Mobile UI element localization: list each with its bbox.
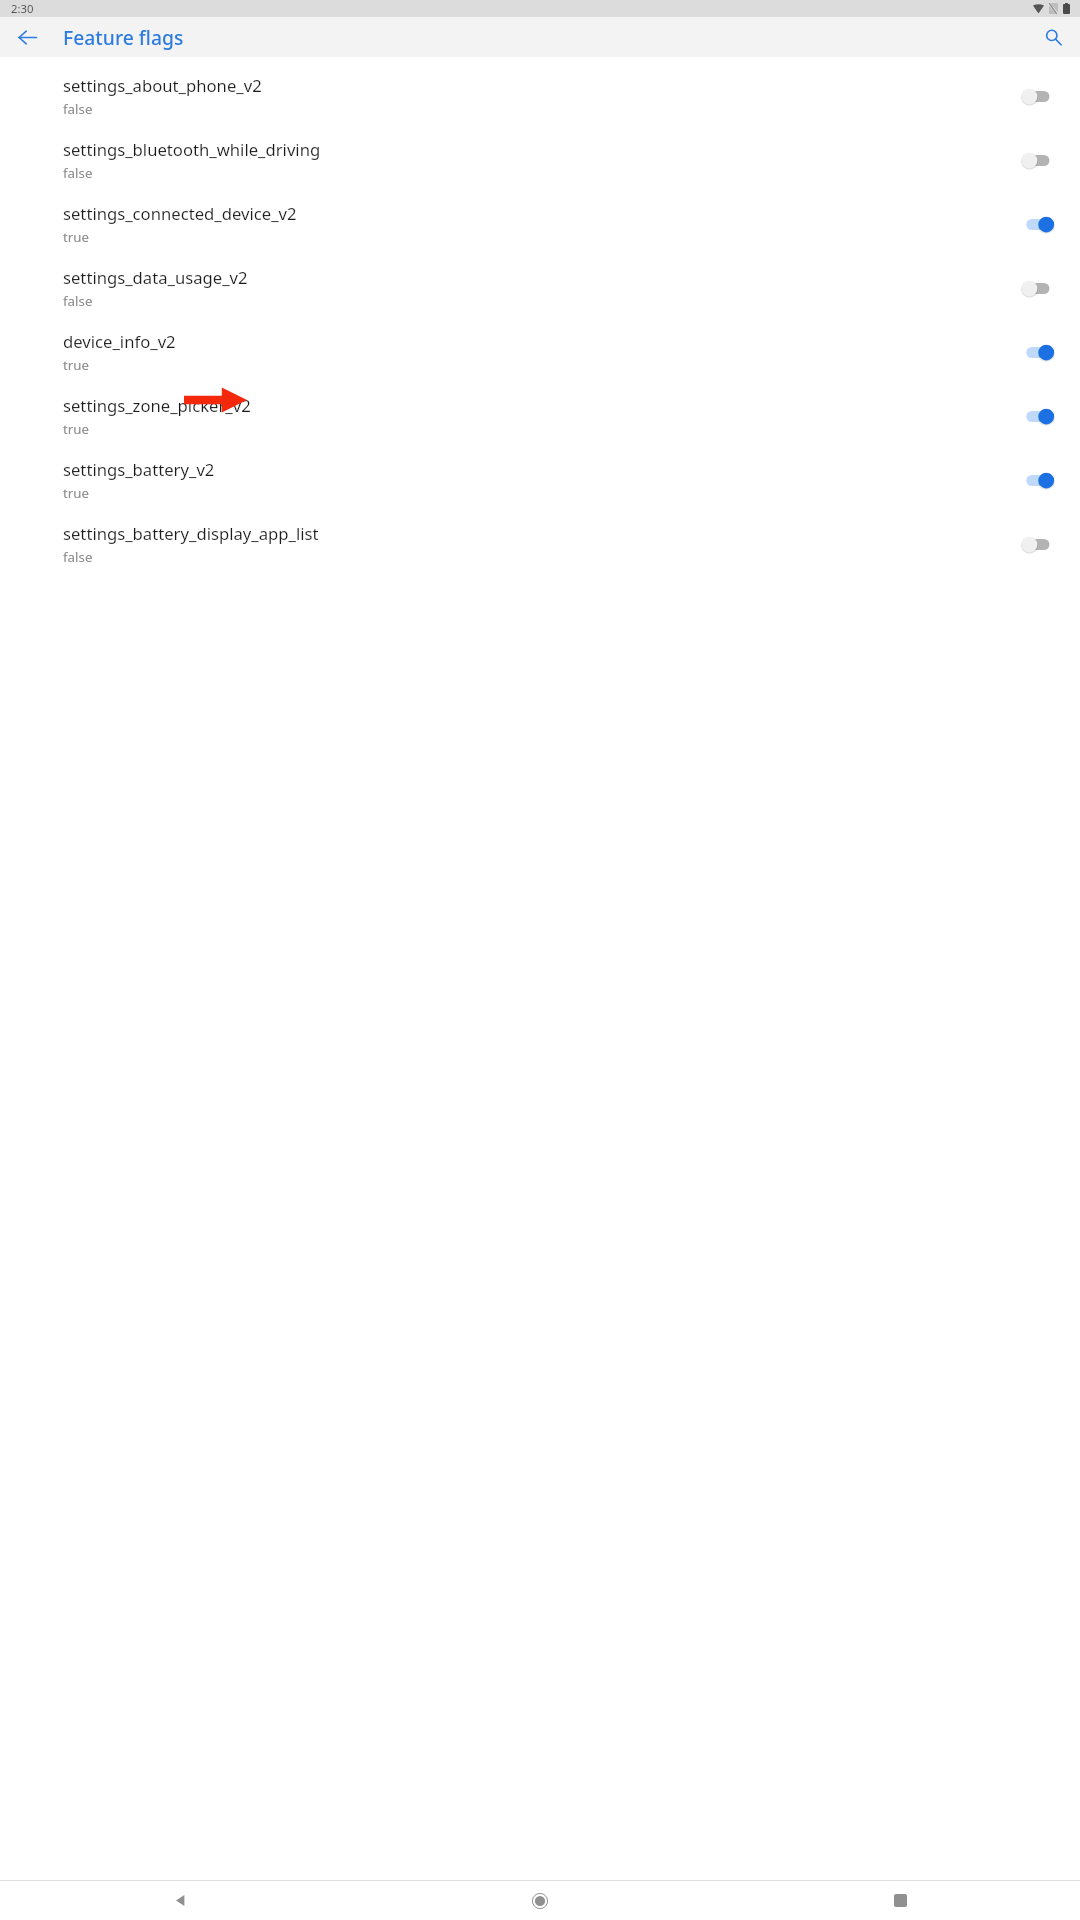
staticText: device_info_v2 <box>63 330 176 353</box>
button[interactable]: settings_zone_picker_v2 <box>0 384 1080 448</box>
staticText: false <box>63 292 93 310</box>
staticText: Feature flags <box>63 24 184 50</box>
staticText: settings_data_usage_v2 <box>63 266 248 289</box>
staticText: settings_connected_device_v2 <box>63 202 297 225</box>
button[interactable] <box>1024 276 1057 301</box>
button[interactable]: settings_bluetooth_while_driving <box>0 128 1080 192</box>
staticText: 2:30 <box>11 1 34 16</box>
staticText: settings_battery_display_app_list <box>63 522 319 545</box>
button[interactable]: device_info_v2 <box>0 320 1080 384</box>
staticText: false <box>63 548 93 566</box>
button[interactable]: Back <box>0 1881 360 1920</box>
staticText: settings_about_phone_v2 <box>63 74 262 97</box>
button[interactable] <box>1024 84 1057 109</box>
staticText: true <box>63 420 90 438</box>
button[interactable]: Recent apps <box>720 1881 1080 1920</box>
button[interactable] <box>1024 404 1057 429</box>
button[interactable]: settings_battery_v2 <box>0 448 1080 512</box>
button[interactable]: settings_about_phone_v2 <box>0 64 1080 128</box>
staticText: settings_battery_v2 <box>63 458 215 481</box>
button[interactable]: Navigate up <box>7 17 47 57</box>
staticText: settings_bluetooth_while_driving <box>63 138 321 161</box>
staticText: true <box>63 484 90 502</box>
button[interactable]: settings_connected_device_v2 <box>0 192 1080 256</box>
staticText: false <box>63 164 93 182</box>
button[interactable] <box>1024 148 1057 173</box>
button[interactable]: settings_battery_display_app_list <box>0 512 1080 576</box>
button[interactable] <box>1024 340 1057 365</box>
staticText: true <box>63 356 90 374</box>
staticText: settings_zone_picker_v2 <box>63 394 251 417</box>
button[interactable]: Search <box>1033 17 1073 57</box>
button[interactable] <box>1024 532 1057 557</box>
button[interactable] <box>1024 468 1057 493</box>
button[interactable]: Home <box>360 1881 720 1920</box>
button[interactable] <box>1024 212 1057 237</box>
staticText: false <box>63 100 93 118</box>
staticText: true <box>63 228 90 246</box>
button[interactable]: settings_data_usage_v2 <box>0 256 1080 320</box>
